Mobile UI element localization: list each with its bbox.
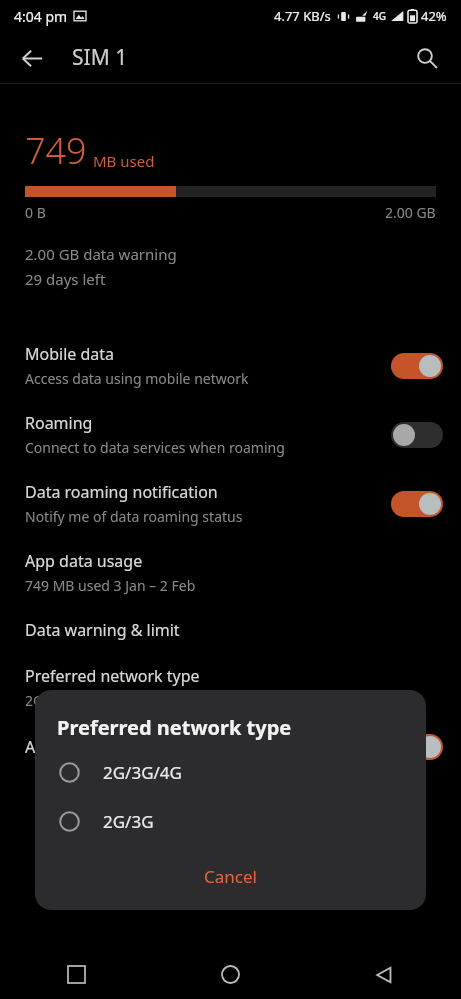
- staticText: Access data using mobile network: [25, 369, 249, 388]
- staticText: 4.77 KB/s: [274, 7, 331, 25]
- staticText: SIM 1: [72, 43, 128, 72]
- button[interactable]: Roaming: [0, 400, 461, 469]
- button[interactable]: Data roaming notification: [0, 469, 461, 538]
- staticText: Mobile data: [25, 343, 115, 365]
- staticText: 2.00 GB data warning: [25, 244, 177, 264]
- button[interactable]: Back: [8, 34, 56, 82]
- staticText: Notify me of data roaming status: [25, 507, 243, 526]
- staticText: App data usage: [25, 550, 143, 572]
- staticText: 0 B: [25, 203, 46, 222]
- button[interactable]: Back: [307, 950, 461, 999]
- staticText: Connect to data services when roaming: [25, 438, 285, 457]
- staticText: Preferred network type: [25, 665, 200, 687]
- staticText: 42%: [421, 7, 447, 25]
- button[interactable]: Home: [153, 950, 307, 999]
- staticText: MB used: [93, 151, 155, 171]
- button[interactable]: 2G/3G/4G: [35, 755, 426, 790]
- button[interactable]: Search: [403, 34, 451, 82]
- button[interactable]: Cancel: [186, 857, 275, 896]
- button[interactable]: [391, 353, 443, 379]
- button[interactable]: 2G/3G: [35, 804, 426, 839]
- button[interactable]: [391, 734, 443, 760]
- staticText: Roaming: [25, 412, 93, 434]
- staticText: 4G: [373, 9, 386, 23]
- staticText: 2.00 GB: [385, 203, 436, 222]
- staticText: 2G/3G/4G: [25, 691, 91, 710]
- staticText: 4:04 pm: [14, 7, 68, 26]
- staticText: Data warning & limit: [25, 619, 180, 641]
- staticText: 749: [25, 126, 87, 175]
- button[interactable]: [391, 491, 443, 517]
- staticText: Data roaming notification: [25, 481, 218, 503]
- staticText: Cancel: [204, 865, 257, 888]
- button[interactable]: [391, 422, 443, 448]
- staticText: 749 MB used 3 Jan – 2 Feb: [25, 576, 196, 595]
- staticText: Preferred network type: [57, 714, 292, 741]
- button[interactable]: Data warning & limit: [0, 607, 461, 653]
- button[interactable]: Mobile data: [0, 331, 461, 400]
- button[interactable]: Automatically select network: [0, 722, 461, 772]
- staticText: 2G/3G: [103, 810, 154, 833]
- staticText: Automatically select network: [25, 736, 242, 758]
- staticText: 29 days left: [25, 269, 106, 289]
- button[interactable]: Preferred network type: [0, 653, 461, 722]
- button[interactable]: App data usage: [0, 538, 461, 607]
- button[interactable]: Recents: [0, 950, 153, 999]
- staticText: 2G/3G/4G: [103, 761, 182, 784]
